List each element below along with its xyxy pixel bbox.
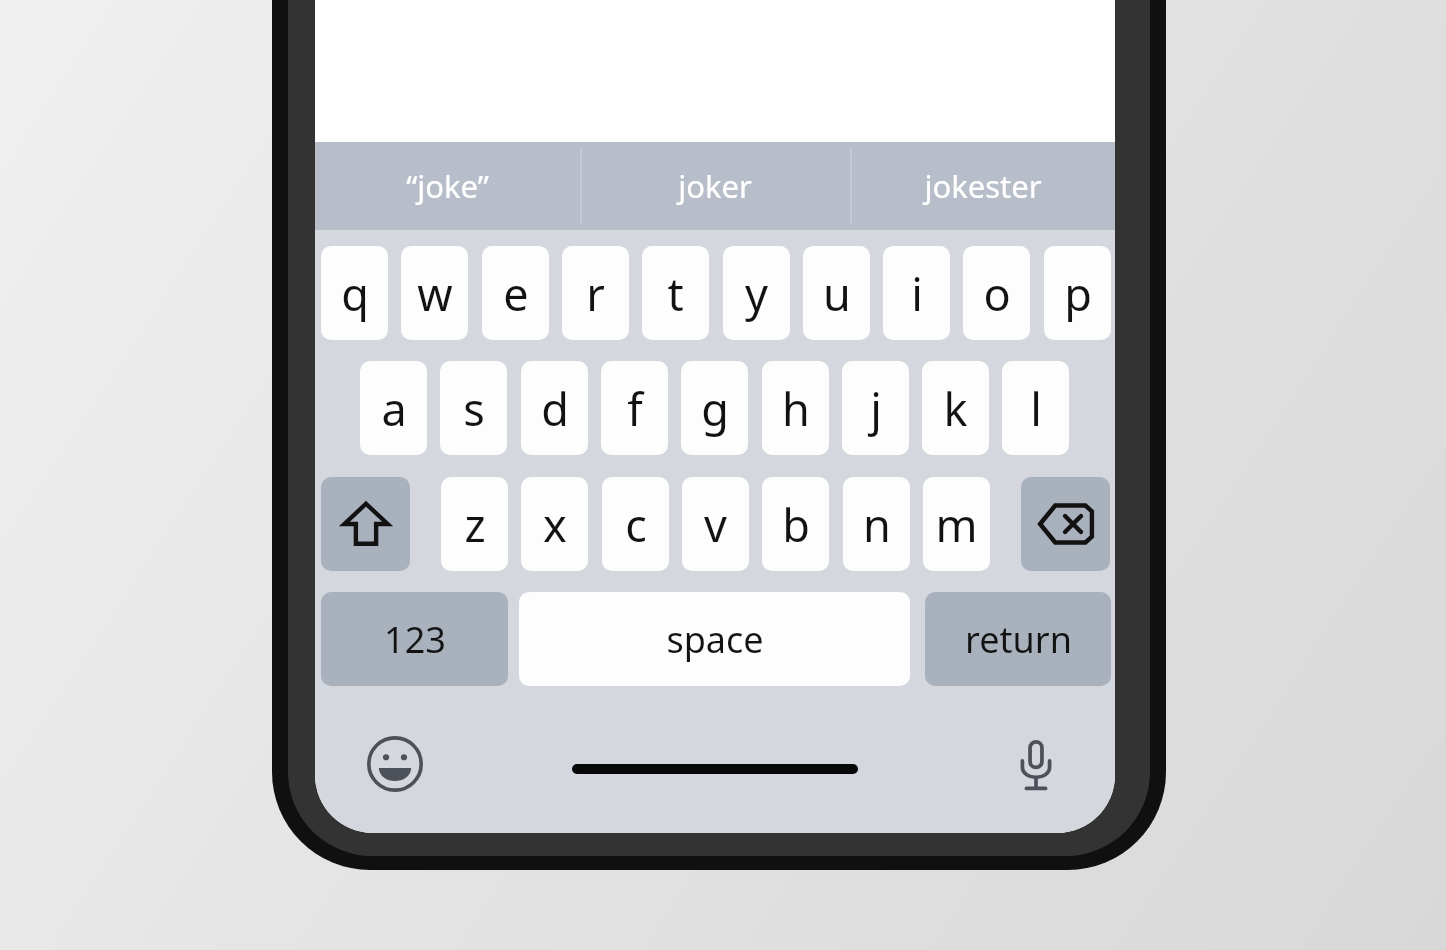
button[interactable]: o <box>963 246 1030 340</box>
button[interactable]: c <box>602 477 669 571</box>
staticText: k <box>943 378 968 439</box>
staticText: f <box>627 378 643 439</box>
staticText: jokester <box>924 165 1042 207</box>
staticText: i <box>911 263 923 324</box>
button[interactable]: l <box>1002 361 1069 455</box>
button[interactable]: t <box>642 246 709 340</box>
staticText: 123 <box>384 615 446 664</box>
staticText: return <box>965 615 1072 664</box>
button[interactable]: e <box>482 246 549 340</box>
staticText: d <box>541 378 569 439</box>
button[interactable]: k <box>922 361 989 455</box>
staticText: g <box>701 378 729 439</box>
staticText: q <box>341 263 369 324</box>
staticText: l <box>1030 378 1042 439</box>
button[interactable]: g <box>681 361 748 455</box>
staticText: space <box>666 615 764 664</box>
staticText: joker <box>678 165 752 207</box>
staticText: y <box>745 263 768 324</box>
button[interactable]: z <box>441 477 508 571</box>
staticText: h <box>782 378 810 439</box>
button[interactable]: Emoji keyboard <box>363 732 427 796</box>
staticText: a <box>381 378 407 439</box>
staticText: e <box>503 263 529 324</box>
button[interactable]: Shift <box>321 477 410 571</box>
button[interactable]: x <box>521 477 588 571</box>
staticText: j <box>870 378 882 439</box>
button[interactable]: Backspace <box>1021 477 1110 571</box>
button[interactable]: f <box>601 361 668 455</box>
button[interactable]: m <box>923 477 990 571</box>
staticText: b <box>782 494 810 555</box>
button[interactable]: i <box>883 246 950 340</box>
button[interactable]: jokester <box>850 142 1115 230</box>
staticText: r <box>586 263 605 324</box>
staticText: “joke” <box>406 165 489 207</box>
button[interactable]: 123 <box>321 592 508 686</box>
button[interactable]: j <box>842 361 909 455</box>
button[interactable]: a <box>360 361 427 455</box>
staticText: m <box>935 494 978 555</box>
button[interactable]: w <box>401 246 468 340</box>
staticText: p <box>1064 263 1092 324</box>
button[interactable]: return <box>925 592 1111 686</box>
button[interactable]: v <box>682 477 749 571</box>
staticText: x <box>543 494 567 555</box>
staticText: z <box>464 494 486 555</box>
staticText: o <box>983 263 1011 324</box>
button[interactable]: space <box>519 592 910 686</box>
button[interactable]: p <box>1044 246 1111 340</box>
staticText: v <box>704 494 727 555</box>
button[interactable]: d <box>521 361 588 455</box>
button[interactable]: joker <box>580 142 850 230</box>
button[interactable]: u <box>803 246 870 340</box>
button[interactable]: Dictation <box>1004 732 1068 796</box>
button[interactable]: r <box>562 246 629 340</box>
staticText: s <box>463 378 485 439</box>
staticText: u <box>823 263 851 324</box>
button[interactable]: y <box>723 246 790 340</box>
staticText: t <box>667 263 684 324</box>
staticText: n <box>863 494 891 555</box>
button[interactable]: “joke” <box>315 142 580 230</box>
button[interactable]: q <box>321 246 388 340</box>
staticText: w <box>417 263 453 324</box>
button[interactable]: h <box>762 361 829 455</box>
button[interactable]: n <box>843 477 910 571</box>
button[interactable]: b <box>762 477 829 571</box>
staticText: c <box>625 494 647 555</box>
button[interactable]: s <box>440 361 507 455</box>
